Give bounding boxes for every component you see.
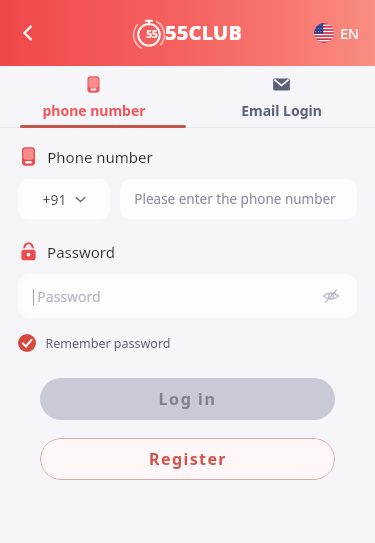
button[interactable]: Back xyxy=(6,11,50,55)
staticText: Please enter the phone number xyxy=(134,190,336,208)
staticText: EN xyxy=(340,24,359,43)
button[interactable]: Please enter the phone number xyxy=(120,179,357,219)
button[interactable]: Email Login xyxy=(187,66,375,128)
staticText: Register xyxy=(149,448,227,470)
button[interactable]: +91 xyxy=(18,179,110,219)
button[interactable]: Show password xyxy=(317,282,345,310)
staticText: Log in xyxy=(158,388,217,410)
staticText: Remember password xyxy=(45,335,171,352)
staticText: 55 xyxy=(146,27,158,41)
staticText: phone number xyxy=(42,101,146,120)
staticText: Email Login xyxy=(241,101,322,120)
staticText: 55CLUB xyxy=(165,19,242,46)
button[interactable]: phone number xyxy=(0,66,187,128)
staticText: Password xyxy=(37,287,101,306)
button[interactable]: EN xyxy=(310,19,363,47)
button[interactable]: Remember password xyxy=(18,334,171,352)
staticText: Phone number xyxy=(47,147,153,167)
staticText: Password xyxy=(47,242,115,262)
staticText: +91 xyxy=(42,190,67,209)
button[interactable]: Password xyxy=(18,274,357,318)
button[interactable]: Log in xyxy=(40,378,335,420)
button[interactable]: Register xyxy=(40,438,335,480)
